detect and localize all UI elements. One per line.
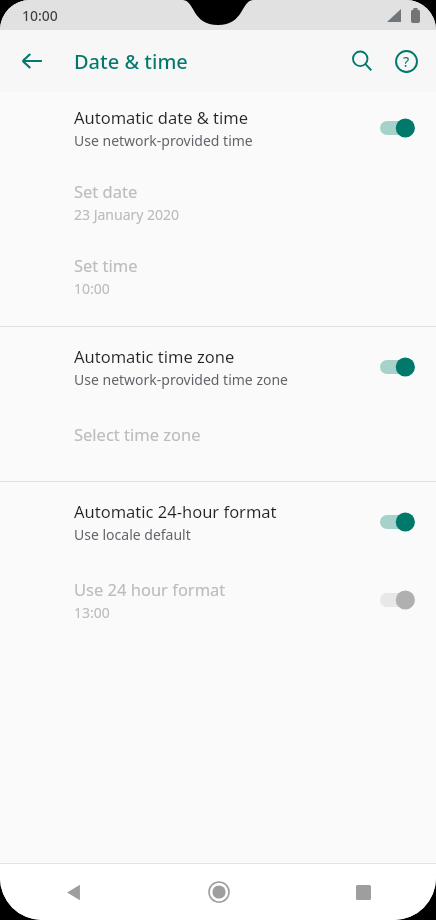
button[interactable]: Back xyxy=(10,39,54,83)
staticText: Set time xyxy=(74,254,138,276)
staticText: 10:00 xyxy=(22,6,58,25)
button[interactable]: Help xyxy=(384,39,428,83)
button[interactable]: Automatic time zone xyxy=(0,327,436,393)
button[interactable]: Select time zone xyxy=(0,393,436,449)
button[interactable]: Recent apps xyxy=(291,864,436,920)
staticText: ? xyxy=(403,52,410,71)
button[interactable]: Search xyxy=(340,39,384,83)
staticText: Date & time xyxy=(74,48,188,75)
staticText: 10:00 xyxy=(74,279,110,298)
staticText: Set date xyxy=(74,180,138,202)
button[interactable]: Automatic 24-hour format xyxy=(0,482,436,548)
staticText: Automatic time zone xyxy=(74,345,235,367)
staticText: Use network-provided time xyxy=(74,131,253,150)
staticText: Automatic date & time xyxy=(74,106,249,128)
staticText: Select time zone xyxy=(74,423,201,445)
staticText: Use network-provided time zone xyxy=(74,370,288,389)
button[interactable]: Set date xyxy=(0,154,436,228)
button[interactable]: Back xyxy=(0,864,146,920)
button[interactable]: Automatic date & time xyxy=(0,92,436,154)
staticText: 13:00 xyxy=(74,603,110,622)
staticText: Use 24 hour format xyxy=(74,578,226,600)
button[interactable]: Set time xyxy=(0,228,436,302)
button[interactable]: Use 24 hour format xyxy=(0,548,436,626)
staticText: Automatic 24-hour format xyxy=(74,500,277,522)
staticText: 23 January 2020 xyxy=(74,205,180,224)
staticText: Use locale default xyxy=(74,525,191,544)
button[interactable]: Home xyxy=(146,864,291,920)
